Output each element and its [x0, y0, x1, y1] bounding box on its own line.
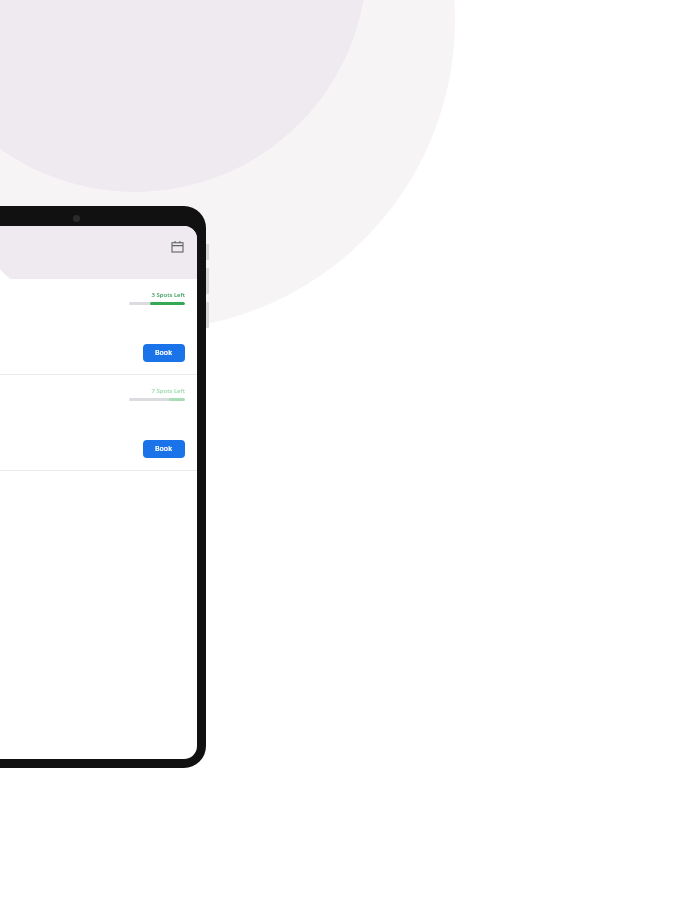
staticText: Book — [155, 444, 173, 454]
button[interactable]: Calendar — [169, 238, 185, 254]
staticText: Book — [155, 348, 173, 358]
button[interactable]: Morning Flow Yoga — [0, 279, 197, 374]
button[interactable]: Strength & Core — [0, 375, 197, 470]
staticText: 7 Spots Left — [151, 387, 185, 395]
staticText: 3 Spots Left — [151, 291, 185, 299]
button[interactable]: Book — [143, 344, 185, 362]
button[interactable]: Book — [143, 440, 185, 458]
